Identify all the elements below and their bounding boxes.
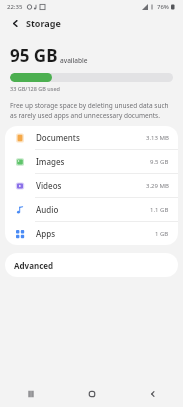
staticText: 1.1 GB [150, 206, 169, 214]
staticText: Free up storage space by deleting unused… [10, 101, 173, 120]
staticText: Audio [36, 204, 59, 215]
staticText: 33 GB/128 GB used [10, 85, 61, 92]
button[interactable]: Images [5, 150, 178, 173]
button[interactable]: Videos [5, 174, 178, 197]
staticText: 3.13 MB [146, 134, 169, 142]
staticText: 9.5 GB [150, 158, 169, 166]
staticText: 22:35 [7, 3, 23, 11]
button[interactable]: Advanced [5, 253, 178, 277]
button[interactable]: Apps [5, 222, 178, 245]
button[interactable]: Documents [5, 126, 178, 149]
button[interactable]: Back [140, 381, 166, 407]
staticText: 95 GB [10, 44, 58, 67]
staticText: Documents [36, 132, 80, 143]
staticText: Apps [36, 228, 56, 239]
button[interactable]: Back [8, 16, 22, 30]
staticText: Videos [36, 180, 62, 191]
staticText: 76% [157, 3, 169, 11]
staticText: 3.29 MB [146, 182, 169, 190]
button[interactable]: Home [79, 381, 105, 407]
staticText: Images [36, 156, 65, 167]
staticText: available [60, 56, 88, 65]
staticText: Advanced [14, 260, 54, 271]
staticText: Storage [26, 17, 61, 29]
button[interactable]: Audio [5, 198, 178, 221]
staticText: 1 GB [155, 230, 169, 238]
button[interactable]: Recents [18, 381, 44, 407]
